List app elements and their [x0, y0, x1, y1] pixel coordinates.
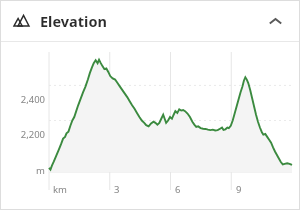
staticText: km	[53, 183, 67, 196]
button[interactable]: Elevation	[0, 0, 300, 41]
staticText: 3	[114, 183, 120, 196]
staticText: 6	[175, 183, 181, 196]
staticText: m	[0, 164, 45, 177]
staticText: 2,400	[0, 93, 45, 106]
staticText: 2,200	[0, 128, 45, 141]
staticText: Elevation	[40, 11, 107, 31]
staticText: 9	[236, 183, 242, 196]
button[interactable]: Collapse	[263, 9, 287, 33]
